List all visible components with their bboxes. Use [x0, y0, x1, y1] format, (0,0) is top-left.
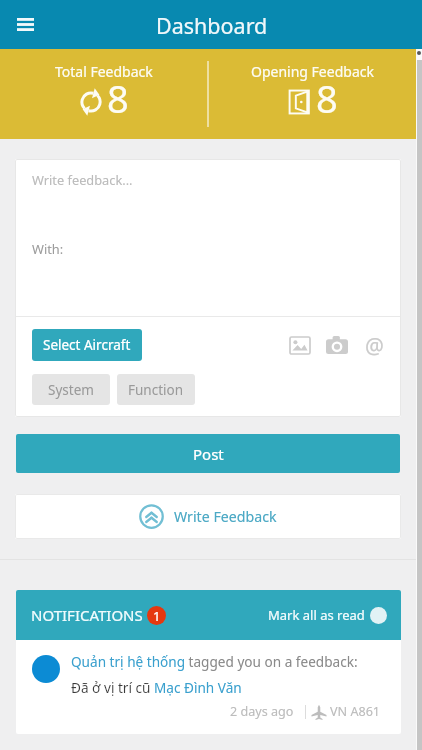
- button[interactable]: Select Aircraft: [32, 329, 142, 361]
- staticText: Select Aircraft: [43, 336, 131, 354]
- button[interactable]: Post: [16, 434, 400, 473]
- button[interactable]: Total Feedback: [0, 49, 207, 139]
- staticText: 1: [153, 607, 161, 625]
- button[interactable]: System: [32, 374, 110, 405]
- staticText: With:: [32, 240, 64, 257]
- staticText: 8: [316, 72, 338, 124]
- staticText: Total Feedback: [55, 62, 153, 81]
- staticText: NOTIFICATIONS: [31, 605, 143, 625]
- staticText: VN A861: [330, 703, 381, 720]
- staticText: Mark all as read: [268, 606, 365, 624]
- staticText: Post: [193, 444, 224, 464]
- staticText: System: [48, 381, 94, 399]
- staticText: 8: [107, 72, 129, 124]
- button[interactable]: Mark all as read: [268, 606, 387, 624]
- button[interactable]: Mention someone: [361, 332, 387, 358]
- staticText: Opening Feedback: [251, 62, 374, 81]
- button[interactable]: Attach photo: [287, 332, 313, 358]
- staticText: Đã ở vị trí cũ Mạc Đình Văn: [71, 678, 242, 697]
- staticText: Write feedback...: [32, 171, 133, 188]
- staticText: Function: [128, 381, 184, 399]
- button[interactable]: Quản trị hệ thống tagged you on a feedba…: [16, 640, 401, 734]
- staticText: Dashboard: [156, 11, 268, 40]
- staticText: Quản trị hệ thống tagged you on a feedba…: [71, 652, 358, 671]
- button[interactable]: Write Feedback: [15, 494, 401, 539]
- button[interactable]: Open navigation menu: [7, 7, 43, 43]
- staticText: 2 days ago: [230, 703, 294, 720]
- button[interactable]: Function: [117, 374, 195, 405]
- staticText: @: [365, 332, 384, 358]
- staticText: Write Feedback: [174, 507, 277, 526]
- button[interactable]: Take photo: [324, 332, 350, 358]
- button[interactable]: Opening Feedback: [209, 49, 416, 139]
